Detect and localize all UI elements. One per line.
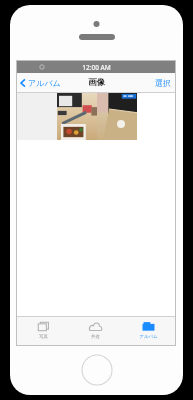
staticText: アルバム [28,78,61,88]
button[interactable]: 写真 [17,316,69,345]
staticText: 選択 [155,78,171,88]
button[interactable]: Home [81,354,113,386]
button[interactable]: Photo of desk [57,93,97,140]
staticText: 共有 [91,334,100,340]
staticText: 写真 [39,334,48,340]
button[interactable]: 選択 [155,73,171,92]
staticText: 画像 [88,77,105,88]
button[interactable]: Photo of laptop [97,93,137,140]
button[interactable]: アルバム [20,73,61,92]
staticText: アルバム [139,334,158,340]
button[interactable]: 共有 [69,316,122,345]
staticText: 12:00 AM [82,63,111,72]
button[interactable]: アルバム [122,316,175,345]
